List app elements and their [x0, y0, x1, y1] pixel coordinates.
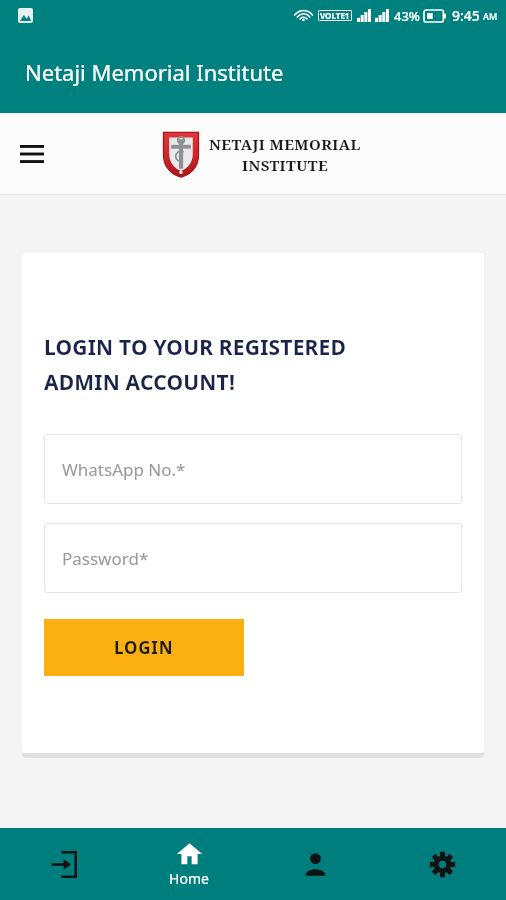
staticText: Password* — [62, 547, 149, 570]
button[interactable]: Password* — [44, 523, 462, 593]
staticText: INSTITUTE — [242, 155, 329, 175]
staticText: Netaji Memorial Institute — [25, 57, 284, 87]
staticText: AM — [483, 10, 498, 22]
staticText: 43% — [394, 7, 420, 25]
staticText: WhatsApp No.* — [62, 458, 186, 481]
button[interactable]: Profile — [252, 828, 379, 900]
button[interactable]: Settings — [379, 828, 506, 900]
staticText: LOGIN TO YOUR REGISTERED — [44, 333, 347, 362]
staticText: 9:45 — [452, 6, 480, 25]
staticText: NETAJI MEMORIAL — [209, 134, 361, 154]
button[interactable]: WhatsApp No.* — [44, 434, 462, 504]
staticText: LOGIN — [114, 636, 174, 659]
button[interactable]: Login — [0, 828, 126, 900]
button[interactable]: LOGIN — [44, 619, 244, 676]
staticText: VOLTE1 — [320, 10, 350, 21]
button[interactable]: Open navigation menu — [8, 130, 56, 178]
staticText: ADMIN ACCOUNT! — [44, 368, 236, 397]
button[interactable]: Home — [126, 828, 252, 900]
staticText: Home — [169, 869, 209, 888]
